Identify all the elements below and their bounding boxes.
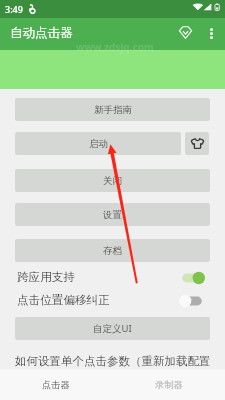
button[interactable]: Premium bbox=[172, 18, 198, 50]
staticText: 存档 bbox=[103, 245, 122, 257]
staticText: 新手指南 bbox=[94, 104, 132, 116]
staticText: 跨应用支持 bbox=[17, 270, 75, 285]
staticText: 自定义UI bbox=[93, 322, 132, 335]
staticText: 点击位置偏移纠正 bbox=[17, 293, 110, 308]
button[interactable]: 关闭 bbox=[15, 169, 210, 192]
staticText: 启动 bbox=[89, 138, 108, 150]
button[interactable]: 跨应用支持 bbox=[15, 266, 210, 289]
button[interactable]: 点击器 bbox=[0, 369, 112, 400]
button[interactable]: 新手指南 bbox=[15, 98, 210, 121]
staticText: 设置 bbox=[103, 209, 122, 221]
staticText: 点击器 bbox=[42, 379, 70, 391]
button[interactable]: 点击位置偏移纠正 bbox=[15, 289, 210, 312]
button[interactable]: 录制器 bbox=[112, 369, 225, 400]
staticText: 如何设置单个点击参数（重新加载配置 bbox=[15, 354, 211, 368]
button[interactable]: More options bbox=[198, 18, 224, 50]
staticText: 关闭 bbox=[103, 175, 122, 187]
staticText: 自动点击器 bbox=[10, 25, 73, 41]
button[interactable]: Theme bbox=[185, 132, 209, 155]
button[interactable]: 自定义UI bbox=[15, 317, 210, 340]
staticText: www.zdsjq.com bbox=[76, 40, 154, 54]
button[interactable]: 设置 bbox=[15, 203, 210, 226]
button[interactable]: 存档 bbox=[15, 239, 210, 262]
staticText: 录制器 bbox=[155, 379, 183, 391]
button[interactable]: 启动 bbox=[15, 132, 181, 155]
staticText: 3:49 bbox=[5, 3, 23, 15]
